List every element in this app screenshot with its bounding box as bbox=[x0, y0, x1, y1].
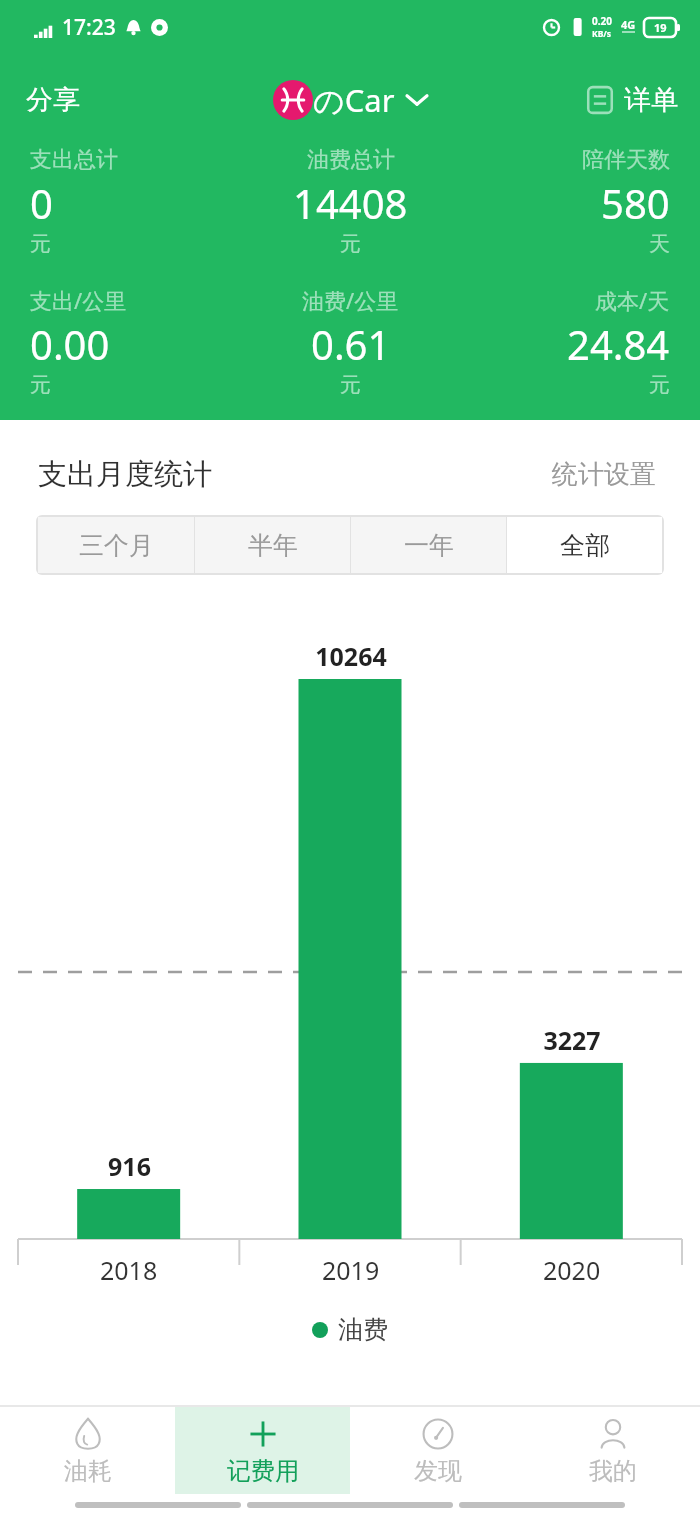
staticText: 三个月 bbox=[79, 530, 154, 561]
button[interactable]: 三个月 bbox=[38, 517, 194, 573]
staticText: 19 bbox=[654, 20, 667, 35]
staticText: 2020 bbox=[543, 1253, 601, 1287]
staticText: 14408 bbox=[293, 176, 408, 230]
staticText: 油费总计 bbox=[307, 146, 395, 174]
staticText: 3227 bbox=[543, 1023, 601, 1057]
staticText: 580 bbox=[601, 176, 670, 230]
staticText: 4G bbox=[621, 17, 636, 32]
staticText: 油耗 bbox=[64, 1456, 112, 1486]
button[interactable]: 我的 bbox=[525, 1407, 700, 1494]
staticText: 半年 bbox=[248, 530, 298, 561]
button[interactable]: のCar bbox=[263, 71, 437, 129]
staticText: 记费用 bbox=[227, 1456, 299, 1486]
staticText: 17:23 bbox=[62, 13, 116, 42]
staticText: KB/s bbox=[592, 28, 612, 40]
staticText: 元 bbox=[30, 372, 51, 398]
staticText: 0 bbox=[30, 176, 53, 230]
staticText: 24.84 bbox=[567, 317, 670, 371]
staticText: 2019 bbox=[322, 1253, 380, 1287]
staticText: 元 bbox=[30, 231, 51, 257]
staticText: 成本/天 bbox=[595, 285, 670, 315]
button[interactable]: 半年 bbox=[195, 517, 350, 573]
staticText: 10264 bbox=[315, 639, 387, 673]
staticText: 油费 bbox=[338, 1314, 388, 1345]
button[interactable]: 统计设置 bbox=[546, 452, 662, 497]
staticText: 916 bbox=[108, 1149, 151, 1183]
staticText: 我的 bbox=[589, 1456, 637, 1486]
staticText: 分享 bbox=[26, 83, 80, 117]
button[interactable]: 一年 bbox=[351, 517, 506, 573]
staticText: 元 bbox=[649, 372, 670, 398]
button[interactable]: 油耗 bbox=[0, 1407, 175, 1494]
staticText: 0.61 bbox=[311, 317, 391, 371]
staticText: 发现 bbox=[414, 1456, 462, 1486]
staticText: 陪伴天数 bbox=[582, 146, 670, 174]
staticText: 一年 bbox=[404, 530, 454, 561]
staticText: 支出/公里 bbox=[30, 285, 127, 315]
button[interactable]: 记费用 bbox=[175, 1407, 350, 1494]
staticText: 0.00 bbox=[30, 317, 110, 371]
staticText: 全部 bbox=[560, 530, 610, 561]
staticText: 支出月度统计 bbox=[38, 456, 212, 493]
staticText: 元 bbox=[340, 231, 361, 257]
staticText: 2018 bbox=[100, 1253, 158, 1287]
button[interactable]: 分享 bbox=[0, 73, 98, 127]
staticText: 油费/公里 bbox=[302, 285, 399, 315]
button[interactable]: 全部 bbox=[507, 517, 662, 573]
staticText: 支出总计 bbox=[30, 146, 118, 174]
staticText: 元 bbox=[340, 372, 361, 398]
button[interactable]: 详单 bbox=[568, 73, 700, 127]
staticText: 统计设置 bbox=[552, 458, 656, 491]
staticText: 0.20 bbox=[592, 14, 612, 28]
staticText: 详单 bbox=[624, 83, 678, 117]
staticText: 天 bbox=[649, 231, 670, 257]
button[interactable]: 发现 bbox=[350, 1407, 525, 1494]
staticText: のCar bbox=[313, 79, 395, 121]
